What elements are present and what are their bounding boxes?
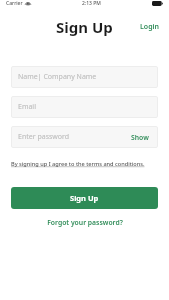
staticText: Carrier (6, 0, 23, 7)
staticText: Name| Company Name (18, 72, 97, 82)
staticText: Sign Up (70, 193, 99, 203)
button[interactable]: Sign Up (11, 187, 158, 209)
button[interactable]: Show (129, 131, 151, 144)
staticText: Show (131, 133, 149, 142)
staticText: Sign Up (56, 17, 113, 37)
button[interactable]: Email (11, 96, 158, 118)
button[interactable]: Forgot your password? (39, 215, 131, 230)
staticText: Enter password (18, 132, 70, 142)
button[interactable]: Name| Company Name (11, 66, 158, 88)
staticText: Email (18, 102, 36, 112)
staticText: 2:13 PM (82, 0, 101, 7)
staticText: Login (140, 22, 159, 32)
button[interactable]: Enter password (11, 126, 158, 148)
button[interactable]: Login (130, 18, 169, 36)
staticText: Forgot your password? (47, 218, 123, 227)
button[interactable]: By signing up I agree to the terms and c… (11, 157, 145, 171)
staticText: By signing up I agree to the terms and c… (11, 160, 145, 168)
